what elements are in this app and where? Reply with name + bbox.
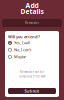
staticText: Reminder [25,21,39,25]
button[interactable]: No, I can't [5,46,59,53]
staticText: Reminder set for [20,70,44,74]
staticText: Add [25,1,38,10]
staticText: Submit [24,88,39,94]
staticText: Maybe [14,54,26,59]
staticText: Yes, I will [14,40,30,45]
button[interactable]: Reminder [2,19,62,27]
button[interactable]: Yes, I will [5,39,59,46]
staticText: Tomorrow 9:00 AM [19,75,45,78]
button[interactable]: Submit [8,88,56,94]
staticText: No, I can't [14,47,31,52]
staticText: Will you attend? [8,34,40,39]
staticText: Details [20,7,43,16]
button[interactable]: Maybe [5,53,59,60]
